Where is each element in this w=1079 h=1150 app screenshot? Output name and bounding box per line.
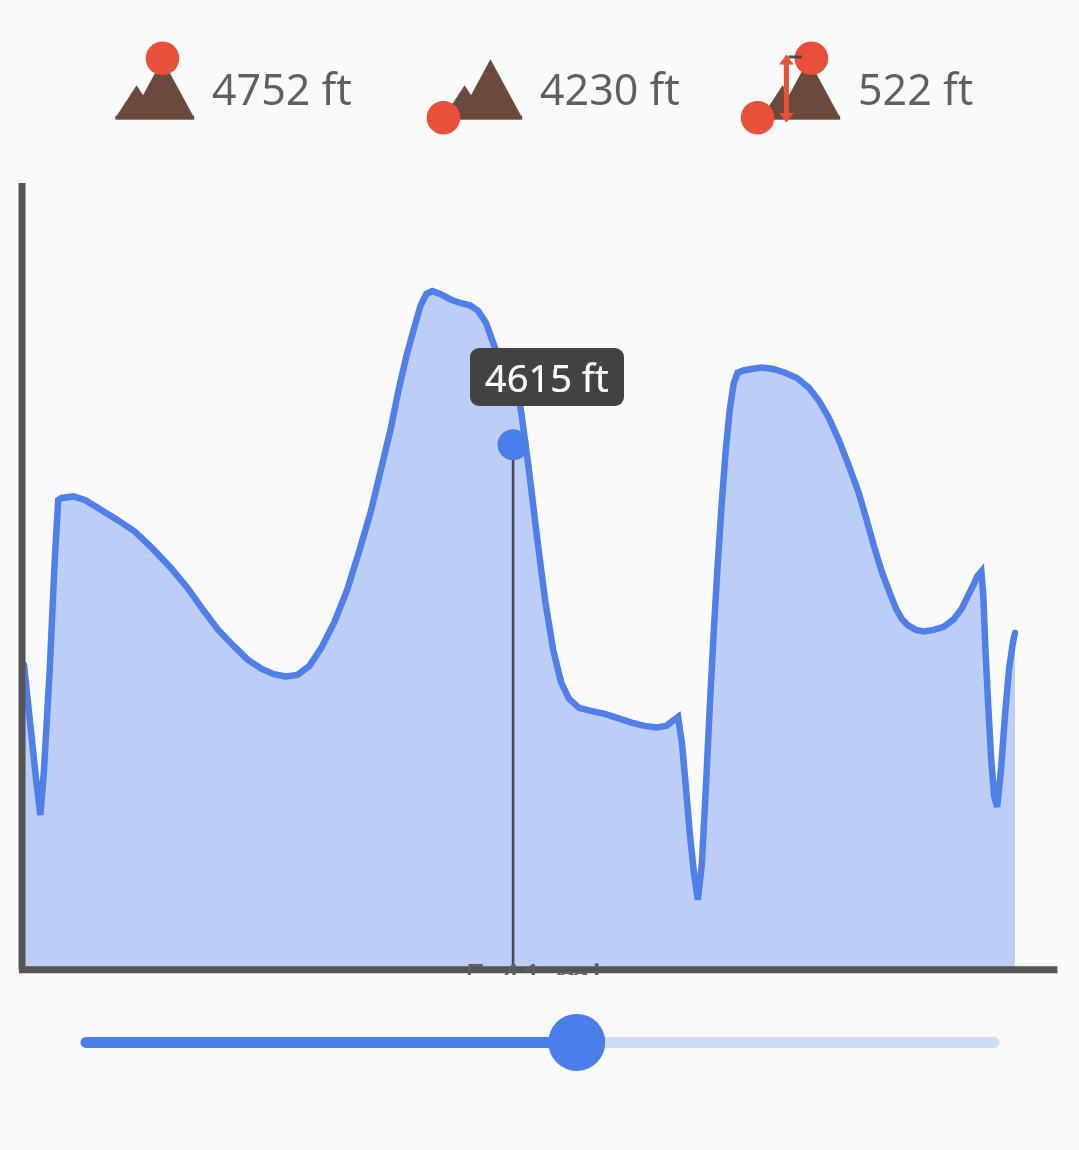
- staticText: 4230 ft: [540, 59, 680, 118]
- staticText: 522 ft: [858, 59, 974, 118]
- button[interactable]: 4615 ft: [0, 175, 1079, 975]
- staticText: 4615 ft: [485, 351, 609, 403]
- button[interactable]: Position along route: [0, 975, 1079, 1150]
- button[interactable]: Minimum elevation 4230 feet: [428, 43, 682, 133]
- staticText: 4752 ft: [212, 59, 352, 118]
- staticText: 5.41 mi: [423, 950, 643, 975]
- button[interactable]: Elevation gain 522 feet: [746, 43, 976, 133]
- button[interactable]: 4615 ft: [470, 348, 624, 406]
- button[interactable]: Maximum elevation 4752 feet: [100, 43, 354, 133]
